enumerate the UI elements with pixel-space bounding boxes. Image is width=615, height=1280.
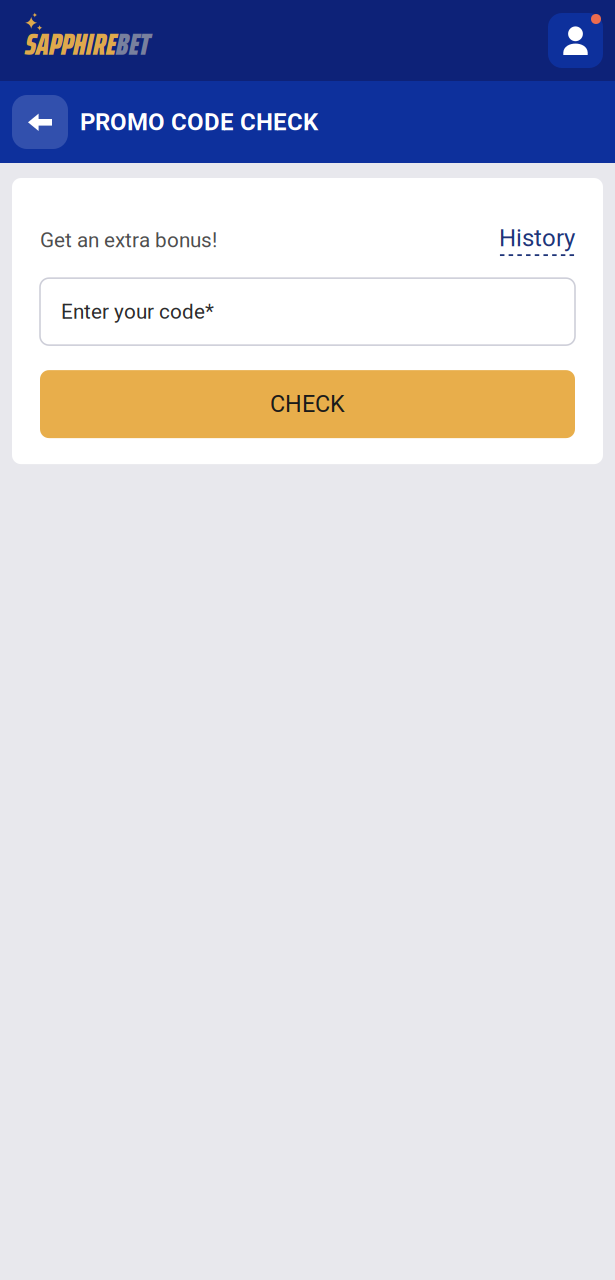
staticText: BET: [116, 20, 150, 68]
staticText: History: [499, 224, 575, 252]
staticText: Get an extra bonus!: [40, 228, 217, 252]
staticText: CHECK: [270, 390, 345, 418]
button[interactable]: History: [499, 224, 575, 256]
staticText: PROMO CODE CHECK: [80, 108, 318, 136]
button[interactable]: Back: [12, 95, 68, 149]
button[interactable]: CHECK: [40, 370, 575, 438]
staticText: Enter your code*: [61, 299, 214, 324]
button[interactable]: Account: [548, 13, 603, 68]
staticText: SAPPHIRE: [25, 20, 116, 68]
